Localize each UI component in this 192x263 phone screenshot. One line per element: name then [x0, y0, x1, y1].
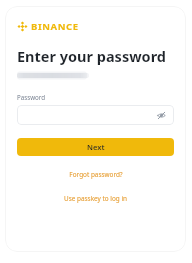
button[interactable]: Show password	[17, 105, 174, 125]
button[interactable]: Forgot password?	[17, 168, 174, 181]
staticText: Next	[87, 142, 105, 152]
staticText: Use passkey to log in	[64, 194, 127, 203]
button[interactable]: Use passkey to log in	[17, 192, 174, 205]
button[interactable]: Next	[17, 138, 174, 156]
staticText: Enter your password	[17, 46, 167, 66]
staticText: Password	[17, 93, 45, 101]
staticText: BINANCE	[31, 20, 79, 33]
staticText: Forgot password?	[69, 170, 123, 179]
button[interactable]: Show password	[155, 109, 168, 122]
